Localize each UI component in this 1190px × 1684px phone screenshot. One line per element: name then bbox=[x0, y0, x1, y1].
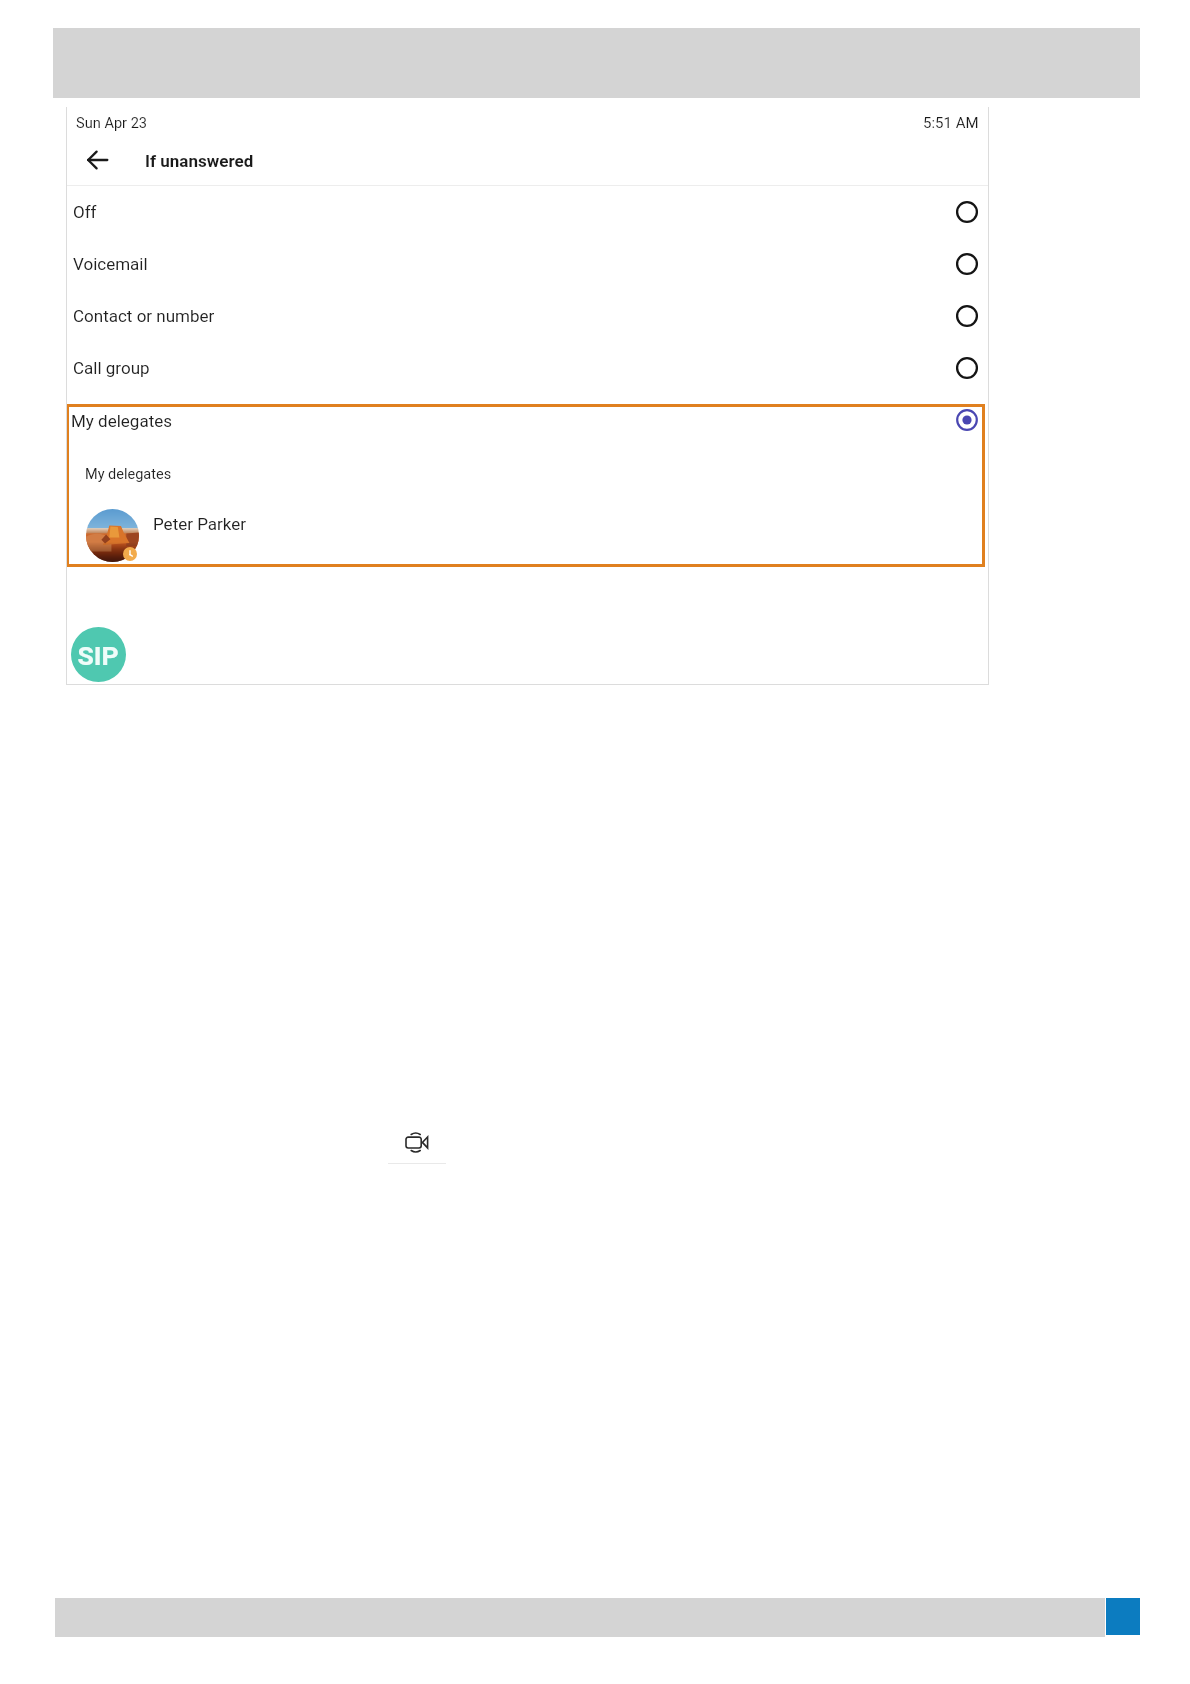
button[interactable]: Contact or number bbox=[66, 290, 989, 342]
button[interactable]: My delegates bbox=[66, 404, 985, 448]
staticText: Off bbox=[73, 202, 97, 222]
button[interactable]: Video camera bbox=[406, 1127, 438, 1158]
staticText: 5:51 AM bbox=[923, 114, 979, 132]
button[interactable]: SIP bbox=[71, 627, 126, 682]
staticText: My delegates bbox=[71, 411, 172, 431]
staticText: Voicemail bbox=[73, 254, 148, 274]
staticText: Sun Apr 23 bbox=[76, 114, 148, 131]
staticText: Call group bbox=[73, 358, 150, 378]
button[interactable]: Off bbox=[66, 186, 989, 238]
staticText: Peter Parker bbox=[153, 514, 247, 534]
button[interactable]: Voicemail bbox=[66, 238, 989, 290]
button[interactable]: Call group bbox=[66, 342, 989, 394]
staticText: My delegates bbox=[85, 466, 172, 483]
button[interactable]: Peter Parker bbox=[66, 505, 985, 560]
staticText: SIP bbox=[77, 640, 119, 671]
button[interactable]: Back bbox=[66, 138, 110, 182]
staticText: Contact or number bbox=[73, 306, 215, 326]
staticText: If unanswered bbox=[145, 151, 254, 171]
